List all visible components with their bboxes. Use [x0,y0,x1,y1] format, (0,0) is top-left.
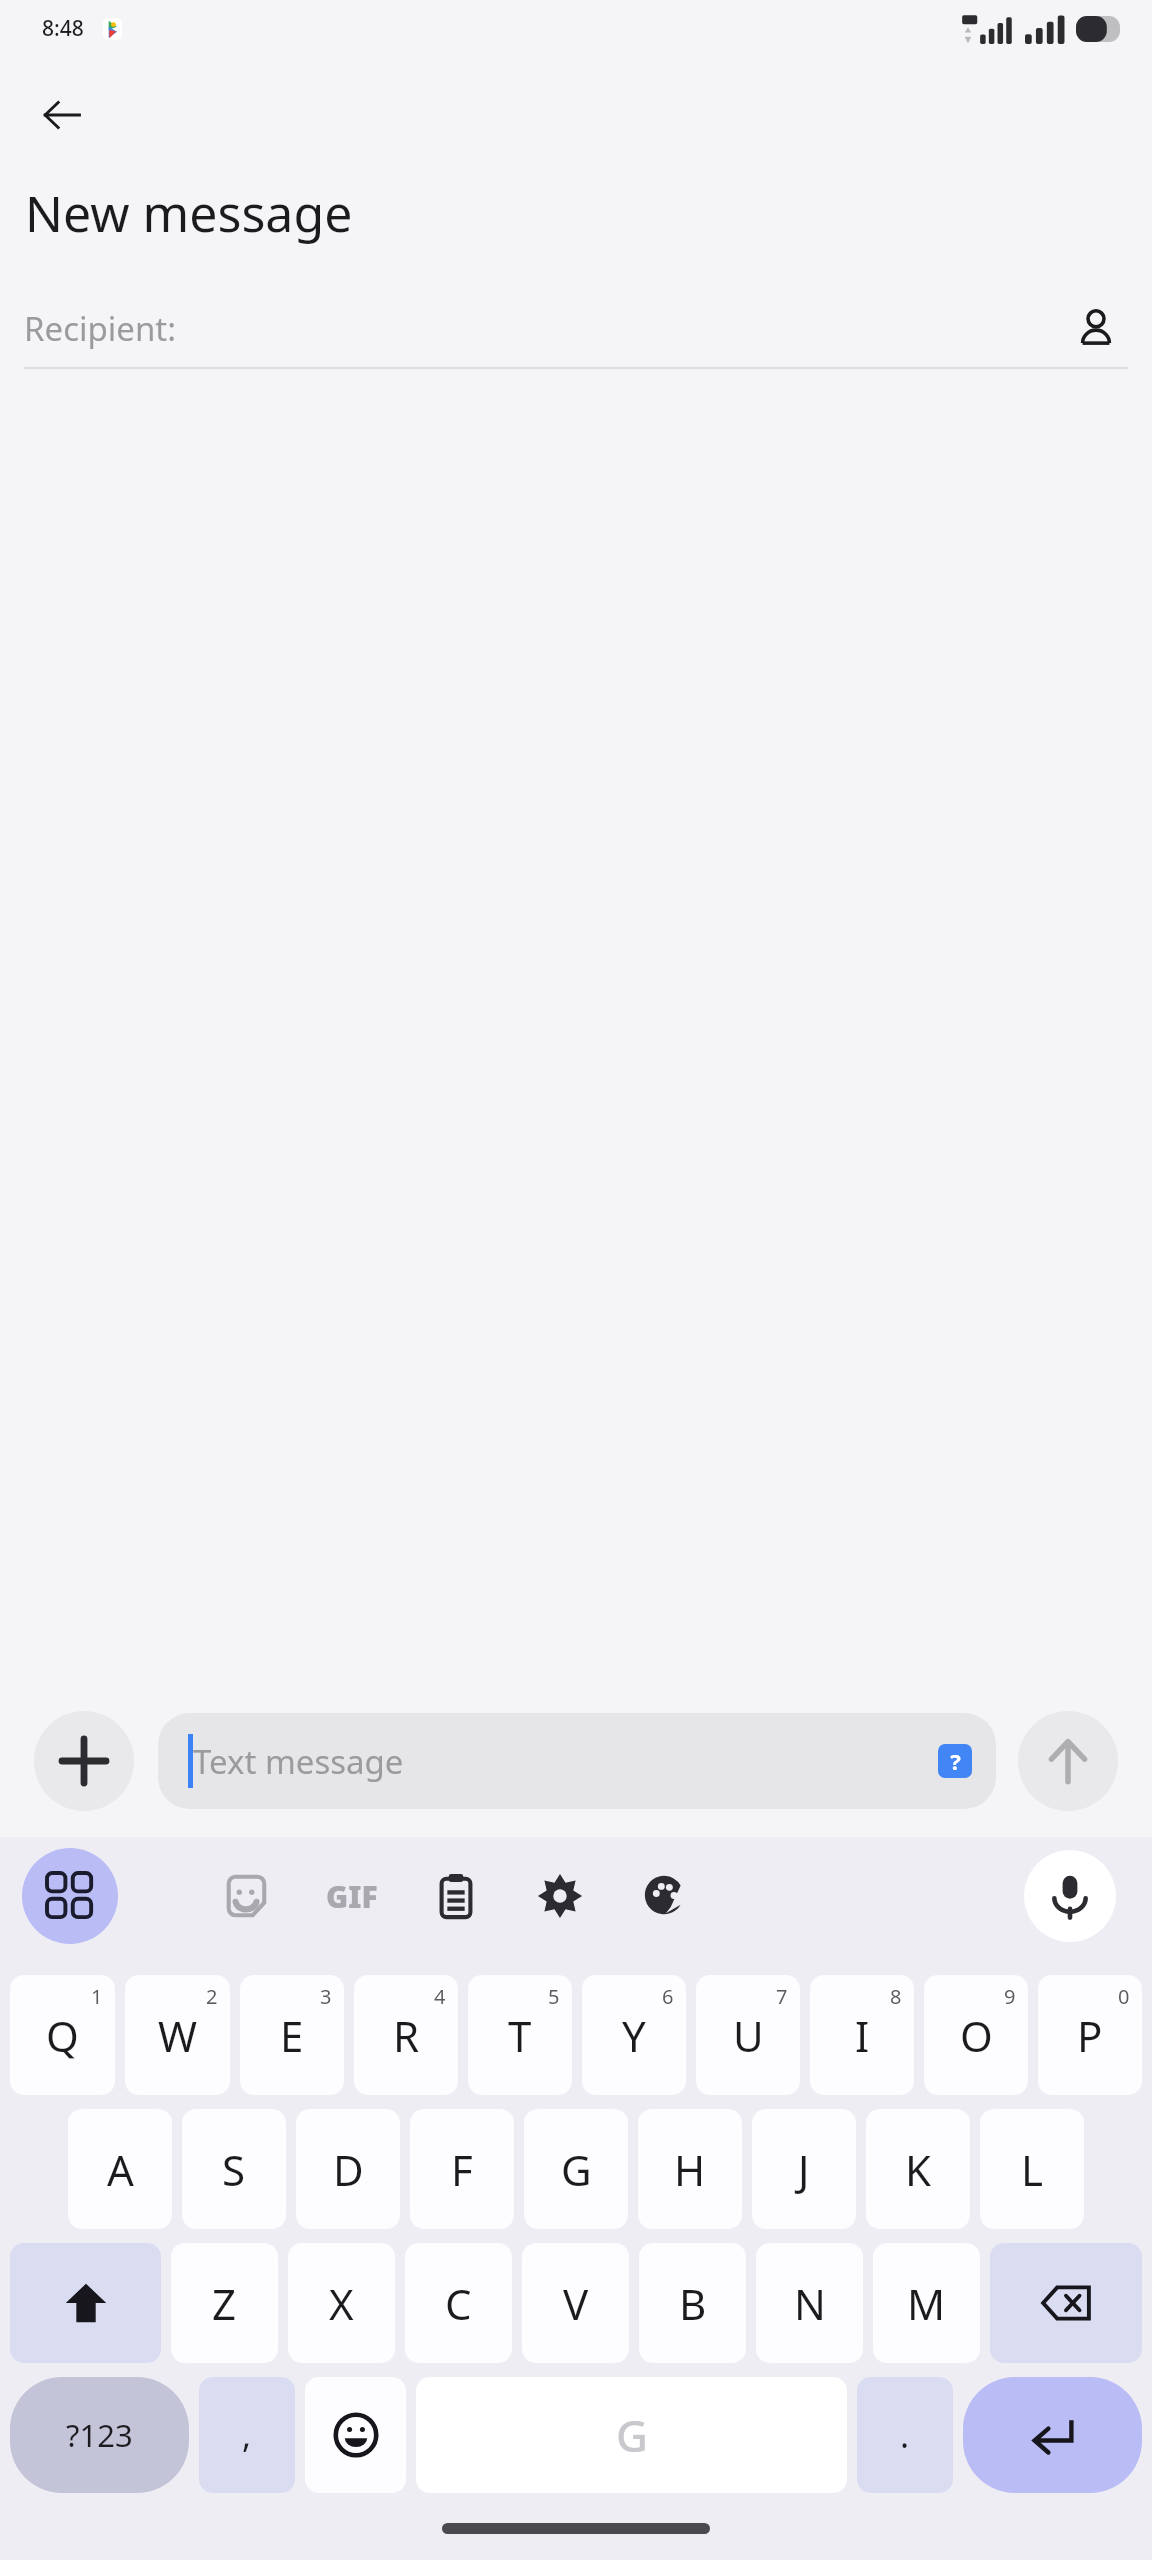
staticText: , [242,2412,252,2458]
button[interactable]: Choose contact [1064,296,1128,360]
button[interactable]: X [288,2243,395,2363]
staticText: H [674,2141,706,2198]
staticText: K [905,2141,931,2198]
staticText: 9 [1004,1983,1016,2010]
button[interactable]: S [182,2109,286,2229]
button[interactable]: Add attachment [34,1711,134,1811]
staticText: Text message [193,1739,404,1784]
staticText: G [616,2405,648,2465]
button[interactable]: H [638,2109,742,2229]
button[interactable]: F [410,2109,514,2229]
staticText: S [222,2141,246,2198]
staticText: P [1077,2007,1103,2064]
staticText: 4 [434,1983,446,2010]
staticText: 1 [91,1983,103,2010]
button[interactable]: I [810,1975,914,2095]
staticText: M [907,2275,946,2332]
button[interactable]: J [752,2109,856,2229]
staticText: A [107,2141,134,2198]
staticText: New message [25,179,353,247]
staticText: Y [622,2007,646,2064]
staticText: 8:48 [42,14,84,43]
button[interactable]: U [696,1975,800,2095]
button[interactable]: P [1038,1975,1142,2095]
button[interactable]: Shift [10,2243,161,2363]
button[interactable]: Voice input [1024,1850,1116,1942]
button[interactable]: C [405,2243,512,2363]
button[interactable]: E [240,1975,344,2095]
button[interactable]: L [980,2109,1084,2229]
staticText: G [561,2141,592,2198]
button[interactable]: Settings [508,1844,612,1948]
staticText: 3 [320,1983,332,2010]
staticText: N [794,2275,826,2332]
staticText: I [855,2007,870,2064]
staticText: J [798,2141,810,2198]
staticText: 2 [206,1983,218,2010]
button[interactable]: Send [1018,1711,1118,1811]
staticText: 6 [662,1983,674,2010]
staticText: U [733,2007,764,2064]
staticText: 8 [890,1983,902,2010]
button[interactable]: ?123 [10,2377,189,2493]
staticText: L [1021,2141,1044,2198]
button[interactable]: Period [857,2377,953,2493]
button[interactable]: Recipient: [24,289,1128,367]
staticText: ?123 [66,2414,133,2456]
button[interactable]: Q [10,1975,115,2095]
staticText: D [333,2141,364,2198]
button[interactable]: Back [26,79,98,151]
button[interactable]: K [866,2109,970,2229]
button[interactable]: M [873,2243,980,2363]
button[interactable]: GIF [300,1844,404,1948]
button[interactable]: Space [416,2377,847,2493]
button[interactable]: N [756,2243,863,2363]
staticText: V [563,2275,589,2332]
staticText: 0 [1118,1983,1130,2010]
staticText: 5 [548,1983,560,2010]
staticText: ? [950,1746,961,1776]
button[interactable]: W [125,1975,230,2095]
staticText: X [329,2275,354,2332]
staticText: C [445,2275,472,2332]
button[interactable]: B [639,2243,746,2363]
button[interactable]: T [468,1975,572,2095]
staticText: E [280,2007,304,2064]
button[interactable]: Backspace [990,2243,1142,2363]
staticText: . [900,2412,910,2458]
staticText: O [960,2007,993,2064]
button[interactable]: V [522,2243,629,2363]
button[interactable]: Text message [158,1713,996,1809]
staticText: B [679,2275,707,2332]
staticText: 7 [776,1983,788,2010]
button[interactable]: Comma [199,2377,295,2493]
staticText: Recipient: [24,306,177,351]
staticText: F [451,2141,473,2198]
staticText: W [158,2007,198,2064]
staticText: T [508,2007,532,2064]
button[interactable]: Theme [612,1844,716,1948]
button[interactable]: A [68,2109,172,2229]
staticText: Z [212,2275,237,2332]
button[interactable]: Enter [963,2377,1142,2493]
button[interactable]: Stickers [194,1844,298,1948]
button[interactable]: R [354,1975,458,2095]
button[interactable]: G [524,2109,628,2229]
button[interactable]: Keyboard modes [22,1848,118,1944]
button[interactable]: D [296,2109,400,2229]
staticText: GIF [326,1876,378,1917]
button[interactable]: Emoji [305,2377,406,2493]
button[interactable]: Z [171,2243,278,2363]
staticText: Q [46,2007,79,2064]
button[interactable]: Clipboard [404,1844,508,1948]
button[interactable]: Y [582,1975,686,2095]
staticText: R [393,2007,420,2064]
button[interactable]: O [924,1975,1028,2095]
